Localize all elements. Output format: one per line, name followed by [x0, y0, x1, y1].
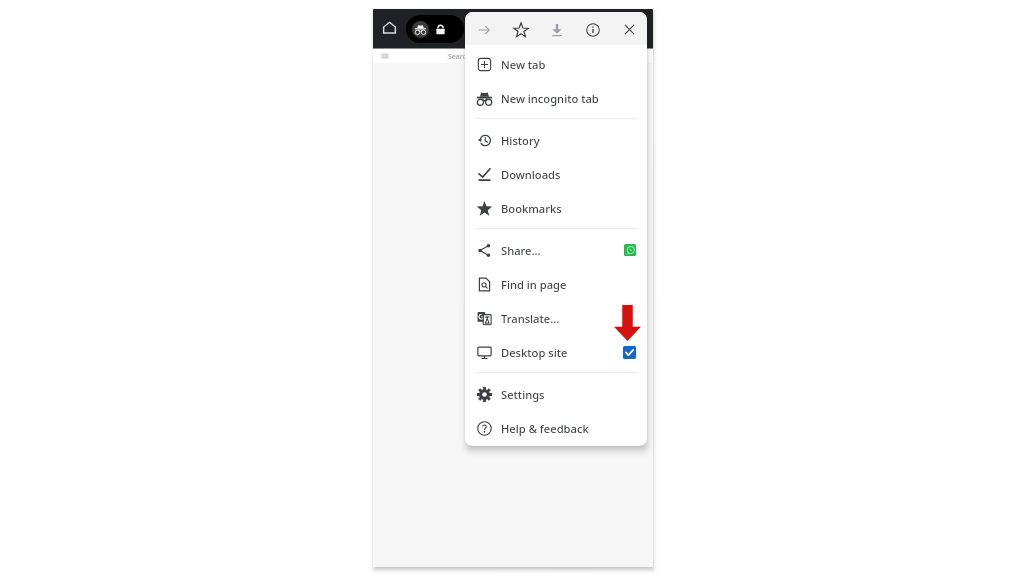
- button[interactable]: New tab: [465, 47, 647, 81]
- staticText: Bookmarks: [501, 201, 562, 216]
- button[interactable]: Bookmark: [502, 12, 539, 45]
- staticText: New incognito tab: [501, 91, 599, 106]
- button[interactable]: Desktop site: [465, 335, 647, 369]
- button[interactable]: Find in page: [465, 267, 647, 301]
- staticText: Downloads: [501, 167, 561, 182]
- staticText: Desktop site: [501, 345, 568, 360]
- staticText: Settings: [501, 387, 545, 402]
- button[interactable]: Bookmarks: [465, 191, 647, 225]
- other: Annotation arrow pointing to Desktop sit…: [614, 305, 641, 341]
- staticText: Translate...: [501, 311, 560, 326]
- button[interactable]: Incognito tabs: [406, 15, 464, 43]
- button[interactable]: Download page: [539, 12, 575, 45]
- button[interactable]: New incognito tab: [465, 81, 647, 115]
- button[interactable]: Close: [611, 12, 647, 45]
- button[interactable]: Home: [379, 17, 399, 37]
- button[interactable]: Search: [445, 50, 653, 63]
- button[interactable]: Page info: [575, 12, 611, 45]
- staticText: Share...: [501, 243, 541, 258]
- button[interactable]: Downloads: [465, 157, 647, 191]
- staticText: Help & feedback: [501, 421, 589, 436]
- button[interactable]: History: [465, 123, 647, 157]
- staticText: History: [501, 133, 540, 148]
- button[interactable]: Help & feedback: [465, 411, 647, 445]
- button[interactable]: Share...: [465, 233, 647, 267]
- button[interactable]: Desktop site checkbox: [623, 346, 636, 359]
- button[interactable]: Settings: [465, 377, 647, 411]
- staticText: Search: [448, 52, 471, 62]
- button[interactable]: Share via WhatsApp: [624, 244, 636, 256]
- button[interactable]: Forward: [465, 12, 502, 45]
- staticText: New tab: [501, 57, 546, 72]
- button[interactable]: Translate...: [465, 301, 647, 335]
- staticText: Find in page: [501, 277, 567, 292]
